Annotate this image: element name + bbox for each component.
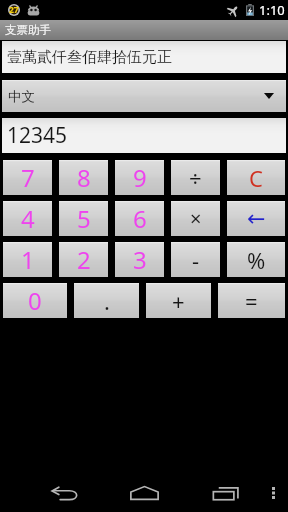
button[interactable]: - xyxy=(171,242,220,277)
staticText: 0 xyxy=(28,284,42,317)
staticText: 6 xyxy=(133,202,147,235)
button[interactable]: ← xyxy=(227,201,285,236)
staticText: % xyxy=(247,245,266,275)
button[interactable]: 6 xyxy=(115,201,164,236)
staticText: ÷ xyxy=(189,163,202,193)
button[interactable]: Back xyxy=(49,474,79,512)
button[interactable]: C xyxy=(227,160,285,195)
staticText: 壹萬貳仟叁佰肆拾伍元正 xyxy=(7,48,172,67)
staticText: - xyxy=(192,245,200,275)
staticText: 9 xyxy=(133,161,147,194)
button[interactable]: 0 xyxy=(3,283,67,318)
staticText: + xyxy=(172,286,185,316)
staticText: 1:10 xyxy=(259,1,285,19)
button[interactable]: 5 xyxy=(59,201,108,236)
staticText: ← xyxy=(247,206,266,232)
staticText: 3 xyxy=(133,243,147,276)
button[interactable]: 壹萬貳仟叁佰肆拾伍元正 xyxy=(2,41,286,73)
button[interactable]: 3 xyxy=(115,242,164,277)
staticText: 5 xyxy=(77,202,91,235)
button[interactable]: 9 xyxy=(115,160,164,195)
button[interactable]: 1 xyxy=(3,242,52,277)
staticText: 1 xyxy=(21,243,35,276)
button[interactable]: Recent apps xyxy=(209,474,241,512)
button[interactable]: × xyxy=(171,201,220,236)
staticText: 4 xyxy=(21,202,35,235)
staticText: 12345 xyxy=(7,121,68,150)
button[interactable]: 中文 xyxy=(2,80,286,112)
button[interactable]: 2 xyxy=(59,242,108,277)
button[interactable]: More options xyxy=(264,474,282,512)
button[interactable]: ÷ xyxy=(171,160,220,195)
button[interactable]: + xyxy=(146,283,211,318)
button[interactable]: % xyxy=(227,242,285,277)
staticText: 7 xyxy=(21,161,35,194)
button[interactable]: 4 xyxy=(3,201,52,236)
staticText: × xyxy=(190,205,202,232)
staticText: 8 xyxy=(77,161,91,194)
staticText: 支票助手 xyxy=(5,23,51,37)
button[interactable]: Home xyxy=(128,474,160,512)
button[interactable]: 7 xyxy=(3,160,52,195)
button[interactable]: = xyxy=(218,283,285,318)
staticText: 27 xyxy=(9,4,19,16)
button[interactable]: . xyxy=(74,283,139,318)
button[interactable]: 支票助手 xyxy=(0,20,288,40)
staticText: C xyxy=(249,163,263,193)
staticText: = xyxy=(245,286,258,316)
staticText: 2 xyxy=(77,243,91,276)
button[interactable]: 12345 xyxy=(2,118,286,153)
staticText: . xyxy=(104,286,110,316)
staticText: 中文 xyxy=(8,88,35,105)
button[interactable]: 8 xyxy=(59,160,108,195)
